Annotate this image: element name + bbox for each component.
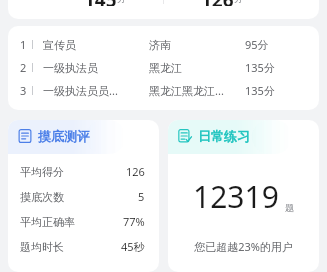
staticText: 12319 [193, 176, 279, 217]
button[interactable]: 2 [20, 56, 307, 79]
staticText: 平均正确率 [20, 215, 75, 229]
other: 摸底测评 [18, 129, 32, 143]
button[interactable]: 摸底测评 [8, 120, 159, 272]
staticText: 摸底测评 [38, 128, 90, 144]
staticText: 平均得分 [20, 165, 64, 179]
button[interactable]: 1 [8, 26, 319, 110]
staticText: 2 [20, 60, 27, 75]
staticText: 95分 [245, 37, 269, 52]
staticText: 济南 [149, 38, 171, 52]
button[interactable]: 日常练习 [168, 120, 319, 272]
staticText: 77% [123, 214, 145, 229]
staticText: 126 [201, 0, 234, 6]
staticText: 题 [285, 202, 294, 213]
staticText: 题均时长 [20, 240, 64, 254]
staticText: 摸底次数 [20, 190, 64, 204]
button[interactable]: 题均时长 [20, 234, 145, 259]
button[interactable]: 摸底次数 [20, 184, 145, 209]
staticText: 宣传员 [43, 38, 76, 52]
staticText: 135分 [245, 83, 275, 98]
button[interactable]: 平均正确率 [20, 209, 145, 234]
button[interactable]: 1 [20, 33, 307, 56]
staticText: 一级执法员员... [43, 83, 118, 98]
staticText: 日常练习 [198, 128, 250, 144]
staticText: 145 [84, 0, 117, 6]
staticText: 分 [234, 0, 243, 4]
staticText: 一级执法员 [43, 61, 98, 75]
button[interactable]: 平均得分 [20, 159, 145, 184]
staticText: 3 [20, 83, 27, 98]
staticText: 126 [126, 164, 145, 179]
staticText: 1 [20, 37, 27, 52]
button[interactable]: 3 [20, 79, 307, 102]
other: 日常练习 [178, 129, 192, 143]
staticText: 黑龙江黑龙江... [149, 83, 224, 98]
staticText: 您已超越23%的用户 [168, 239, 319, 254]
staticText: 分 [117, 0, 126, 4]
staticText: 135分 [245, 60, 275, 75]
button[interactable]: 145 [8, 0, 319, 19]
staticText: 5 [138, 189, 145, 204]
staticText: 45秒 [121, 239, 145, 254]
staticText: 黑龙江 [149, 61, 182, 75]
